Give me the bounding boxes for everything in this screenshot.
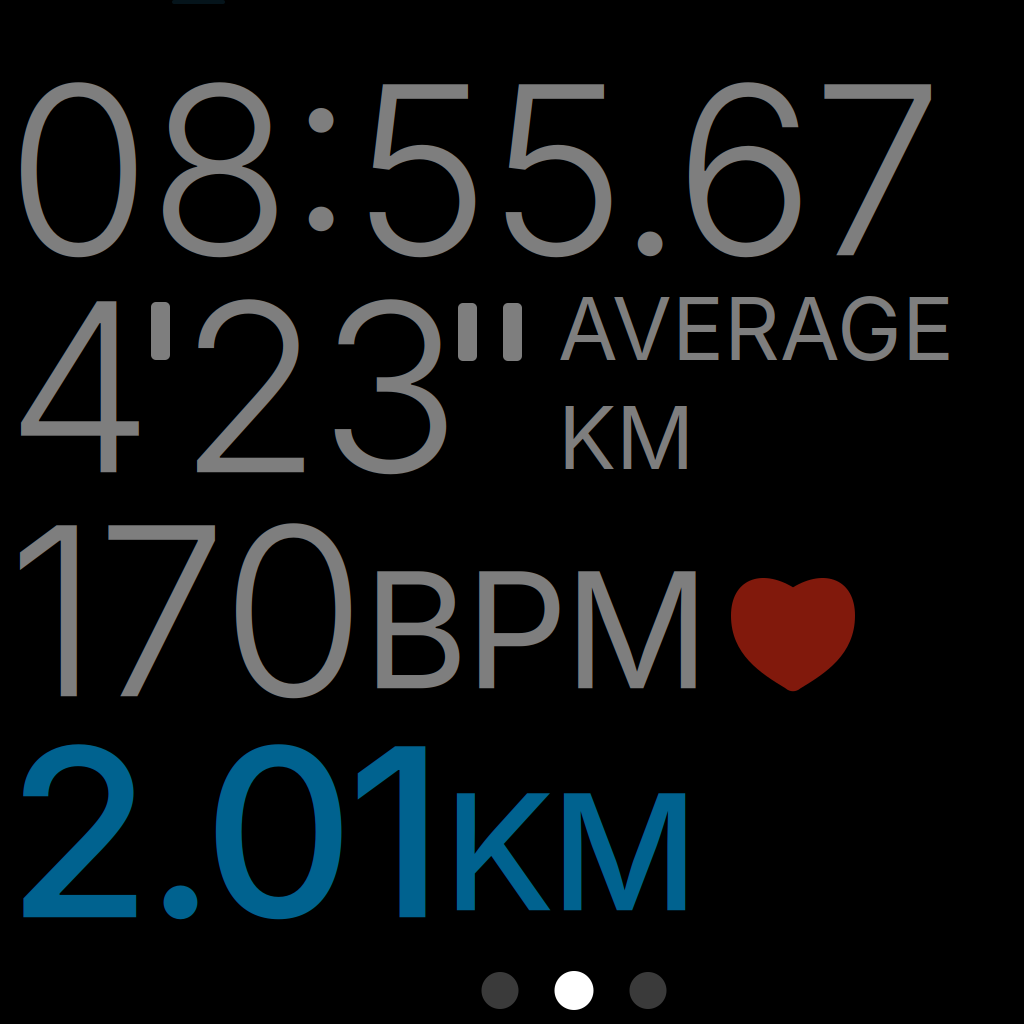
staticText: KM xyxy=(558,385,694,490)
button[interactable]: 170 xyxy=(7,469,957,699)
staticText: 4 xyxy=(6,245,154,529)
staticText: KM xyxy=(444,754,698,949)
button[interactable]: Now Playing page xyxy=(629,972,666,1009)
button[interactable]: 2.01 xyxy=(7,690,957,920)
staticText: 170 xyxy=(7,469,366,753)
button[interactable]: Metrics page, current page xyxy=(554,971,593,1010)
button[interactable]: 08:55.67 xyxy=(6,28,943,312)
staticText: BPM xyxy=(363,532,710,727)
staticText: AVERAGE xyxy=(558,276,954,381)
button[interactable]: 4 xyxy=(4,245,954,475)
staticText: 23 xyxy=(178,245,461,529)
staticText: 2.01 xyxy=(7,690,444,974)
button[interactable]: Workout controls page xyxy=(481,972,518,1009)
staticText: 08:55.67 xyxy=(6,28,943,312)
